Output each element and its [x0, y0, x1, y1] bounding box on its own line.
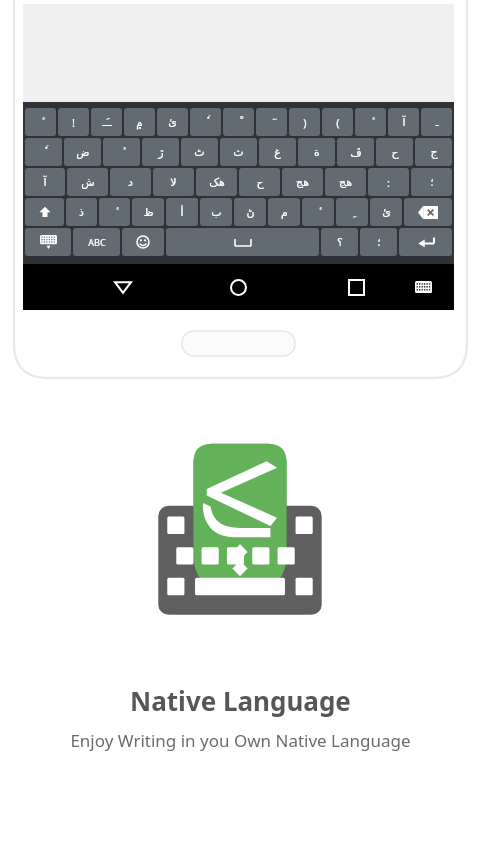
button[interactable]: key [132, 198, 164, 226]
button[interactable]: key [122, 228, 164, 256]
staticText: ) [303, 115, 307, 130]
button[interactable]: key [220, 138, 257, 166]
button[interactable]: key [355, 108, 386, 136]
button[interactable]: key [404, 198, 452, 226]
staticText: ذ [79, 206, 84, 219]
button[interactable]: key [421, 108, 452, 136]
button[interactable]: key [321, 228, 358, 256]
staticText: ح [256, 176, 264, 189]
button[interactable]: key [415, 138, 452, 166]
button[interactable]: key [66, 198, 97, 226]
button[interactable]: key [25, 108, 56, 136]
button[interactable]: key [411, 168, 452, 196]
staticText: ڦ [350, 146, 362, 159]
staticText: ج [430, 146, 438, 159]
button[interactable]: key [91, 108, 122, 136]
button[interactable]: key [157, 108, 188, 136]
button[interactable]: key [336, 198, 368, 226]
button[interactable]: key [153, 168, 194, 196]
button[interactable]: key [289, 108, 320, 136]
staticText: ة [314, 146, 320, 159]
button[interactable]: key [166, 198, 198, 226]
button[interactable]: key [142, 138, 179, 166]
button[interactable]: key [58, 108, 89, 136]
button[interactable]: key [103, 138, 140, 166]
staticText: هج [296, 176, 309, 189]
button[interactable]: key [25, 138, 62, 166]
button[interactable]: key [190, 108, 221, 136]
button[interactable]: key [256, 108, 287, 136]
button[interactable]: key [200, 198, 232, 226]
button[interactable]: key [268, 198, 300, 226]
button[interactable]: key [166, 228, 319, 256]
staticText: ئ [382, 206, 391, 219]
staticText: ـ [435, 116, 439, 129]
staticText: د [128, 176, 133, 189]
button[interactable]: key [99, 198, 130, 226]
button[interactable]: key [25, 228, 71, 256]
staticText: ئ [168, 116, 177, 129]
button[interactable]: key [124, 108, 155, 136]
button[interactable]: key [67, 168, 108, 196]
staticText: ڙ [158, 146, 164, 159]
button[interactable]: key [282, 168, 323, 196]
staticText: ب [211, 206, 222, 219]
button[interactable]: key [234, 198, 266, 226]
staticText: ض [76, 146, 90, 159]
staticText: هک [209, 176, 225, 189]
button[interactable]: key [259, 138, 296, 166]
staticText: ح [391, 146, 399, 159]
staticText: هج [339, 176, 352, 189]
staticText: ظ [143, 206, 154, 219]
button[interactable]: key [25, 168, 65, 196]
staticText: ٹ [194, 146, 205, 159]
staticText: آ [402, 116, 406, 129]
button[interactable]: key [110, 168, 151, 196]
button[interactable]: key [388, 108, 419, 136]
staticText: Enjoy Writing in you Own Native Language [70, 729, 411, 752]
staticText: Native Language [130, 683, 351, 718]
button[interactable]: key [25, 198, 64, 226]
button[interactable]: key [368, 168, 409, 196]
staticText: ۾ [136, 116, 143, 129]
button[interactable]: key [325, 168, 366, 196]
staticText: أ [180, 206, 184, 219]
button[interactable]: key [298, 138, 335, 166]
staticText: ABC [88, 236, 106, 248]
other: Switch keyboard [415, 281, 432, 293]
staticText: م [281, 206, 288, 219]
staticText: آ [43, 176, 47, 189]
button[interactable]: key [337, 138, 374, 166]
button[interactable]: key [64, 138, 101, 166]
button[interactable]: key [239, 168, 280, 196]
button[interactable]: key [376, 138, 413, 166]
button[interactable]: key [399, 228, 452, 256]
button[interactable]: key [302, 198, 334, 226]
button[interactable]: key [322, 108, 353, 136]
staticText: ث [233, 146, 244, 159]
button[interactable]: key [73, 228, 120, 256]
staticText: ش [81, 176, 95, 189]
staticText: ؛ [430, 176, 434, 189]
button[interactable]: key [360, 228, 397, 256]
button[interactable]: key [196, 168, 237, 196]
staticText: غ [274, 146, 281, 159]
staticText: ! [72, 115, 75, 130]
staticText: ـــَ [102, 116, 112, 129]
button[interactable]: key [370, 198, 402, 226]
staticText: لا [170, 176, 177, 189]
staticText: ؟ [337, 236, 343, 249]
staticText: : [387, 175, 390, 190]
staticText: ڻ [246, 206, 255, 219]
staticText: ؛ [377, 236, 381, 249]
button[interactable]: key [223, 108, 254, 136]
staticText: ( [336, 115, 340, 130]
button[interactable]: key [181, 138, 218, 166]
